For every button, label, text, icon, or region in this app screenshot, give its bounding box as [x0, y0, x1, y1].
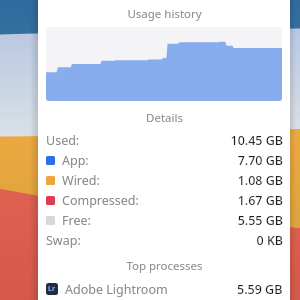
- other: Adobe Lightroom icon: [46, 283, 58, 295]
- button[interactable]: Swap:: [46, 230, 283, 250]
- staticText: Compressed:: [62, 192, 139, 209]
- staticText: 0 KB: [256, 232, 283, 249]
- button[interactable]: Used:: [46, 130, 283, 150]
- staticText: Details: [146, 110, 183, 126]
- staticText: Adobe Lightroom: [65, 281, 168, 298]
- staticText: App:: [62, 152, 89, 169]
- staticText: 1.67 GB: [237, 192, 283, 209]
- staticText: Top processes: [126, 258, 203, 274]
- staticText: Usage history: [127, 6, 202, 22]
- staticText: 10.45 GB: [230, 132, 283, 149]
- staticText: 7.70 GB: [237, 152, 283, 169]
- button[interactable]: Adobe Lightroom icon: [46, 278, 283, 300]
- staticText: Used:: [46, 132, 80, 149]
- button[interactable]: Details: [38, 108, 290, 127]
- button[interactable]: App:: [46, 150, 283, 170]
- button[interactable]: Usage history: [38, 4, 290, 23]
- staticText: 5.59 GB: [237, 281, 283, 298]
- button[interactable]: Compressed:: [46, 190, 283, 210]
- staticText: Swap:: [46, 232, 81, 249]
- button[interactable]: Top processes: [38, 256, 290, 275]
- staticText: 5.55 GB: [237, 212, 283, 229]
- staticText: Lr: [48, 284, 56, 294]
- staticText: Free:: [62, 212, 91, 229]
- button[interactable]: [46, 27, 282, 101]
- staticText: Wired:: [62, 172, 100, 189]
- button[interactable]: Free:: [46, 210, 283, 230]
- button[interactable]: Wired:: [46, 170, 283, 190]
- staticText: 1.08 GB: [237, 172, 283, 189]
